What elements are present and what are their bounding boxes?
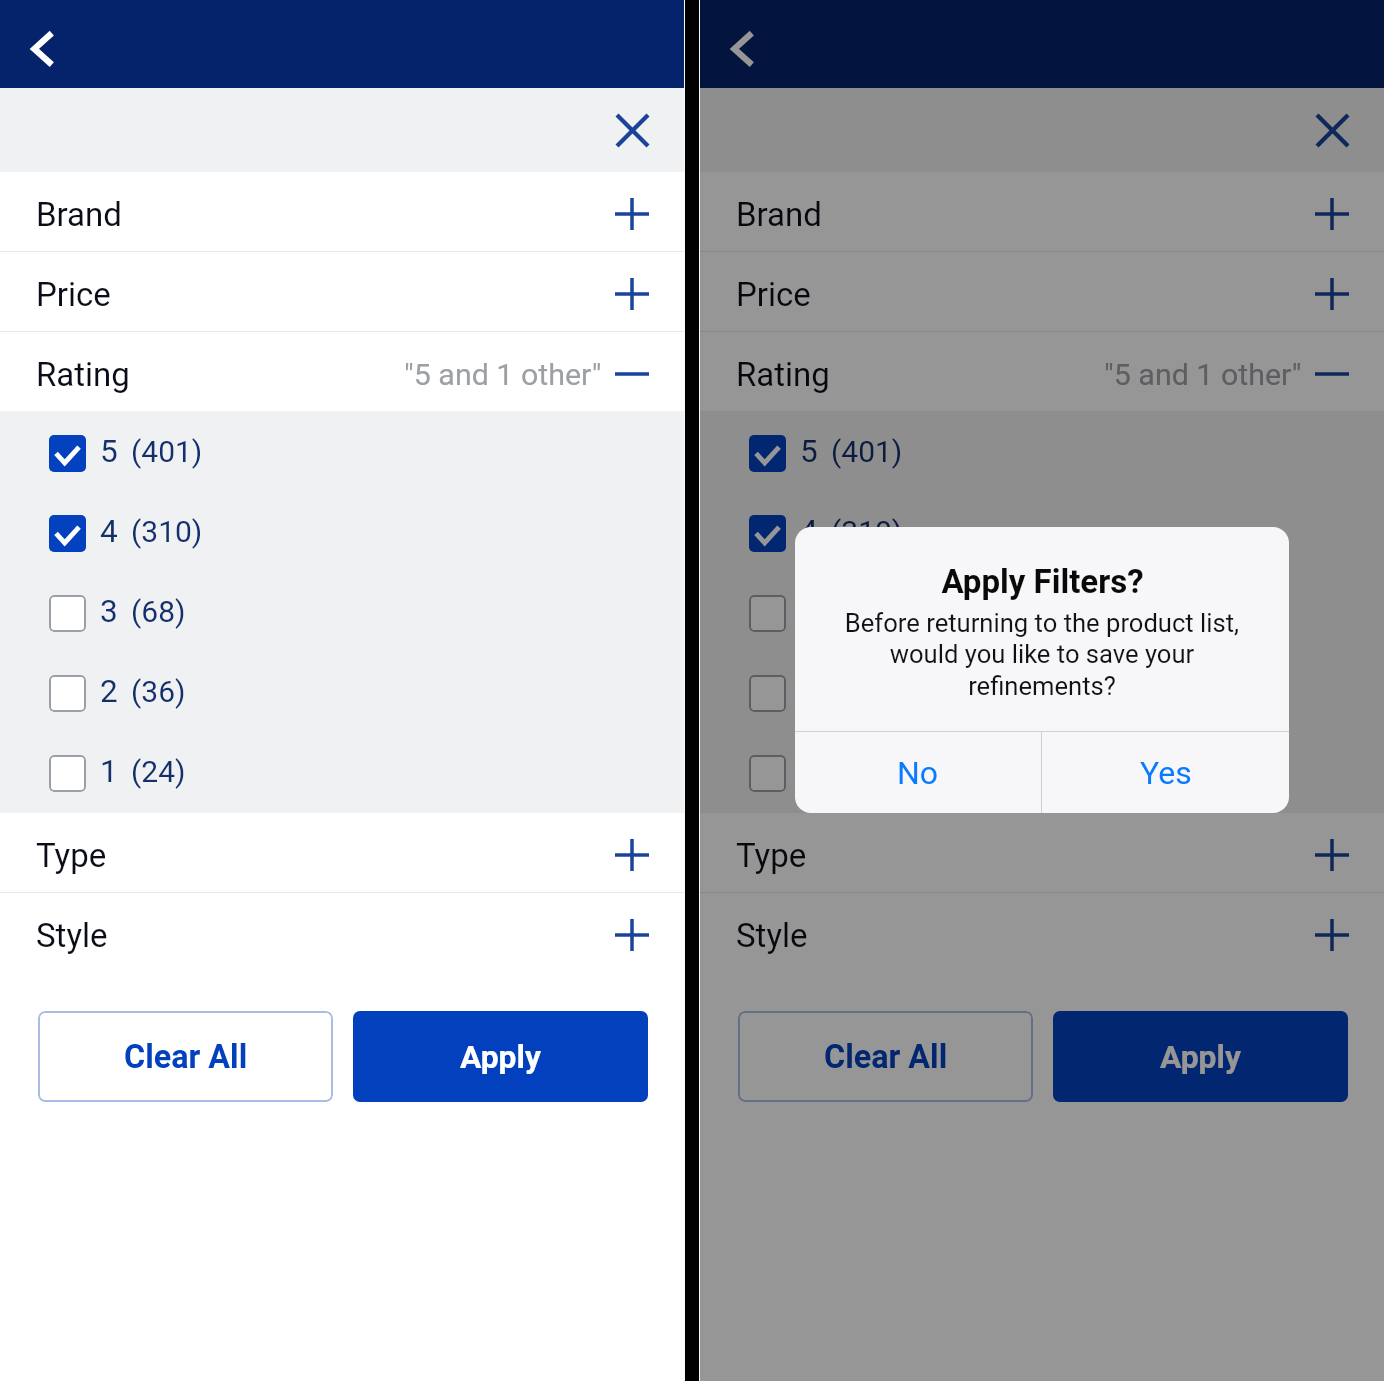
other: Expand Price xyxy=(1315,277,1349,311)
staticText: 3 xyxy=(100,593,118,630)
staticText: 4 xyxy=(800,513,818,550)
other: Expand Brand xyxy=(615,197,649,231)
staticText: Clear All xyxy=(824,1038,948,1076)
staticText: Rating xyxy=(736,355,830,394)
other: Expand Price xyxy=(615,277,649,311)
button[interactable]: No xyxy=(795,732,1041,813)
staticText: 1 xyxy=(100,753,118,790)
button[interactable]: Type xyxy=(700,813,1384,892)
staticText: Price xyxy=(36,275,111,314)
staticText: Clear All xyxy=(124,1038,248,1076)
other: Expand Type xyxy=(615,838,649,872)
staticText: Type xyxy=(736,836,807,875)
button[interactable]: Apply xyxy=(1053,1011,1348,1102)
button[interactable]: 1 xyxy=(0,731,684,811)
button[interactable]: Style xyxy=(700,893,1384,972)
staticText: 5 xyxy=(100,433,118,470)
staticText: Apply xyxy=(1160,1038,1241,1075)
staticText: Brand xyxy=(36,195,122,234)
button[interactable]: 4 xyxy=(700,491,1384,571)
other: Collapse Rating xyxy=(1315,357,1349,391)
staticText: Style xyxy=(36,916,108,955)
button[interactable]: Yes xyxy=(1042,732,1289,813)
button[interactable]: 5 xyxy=(700,411,1384,491)
button[interactable]: 2 xyxy=(0,651,684,731)
staticText: No xyxy=(897,754,939,792)
button[interactable]: 1 xyxy=(700,731,1384,811)
button[interactable]: Back xyxy=(27,27,56,71)
button[interactable]: 2 xyxy=(700,651,1384,731)
button[interactable]: Rating xyxy=(0,332,684,411)
button[interactable]: Style xyxy=(0,893,684,972)
staticText: Apply xyxy=(460,1038,541,1075)
button[interactable]: Clear All xyxy=(738,1011,1033,1102)
button[interactable]: Close xyxy=(617,115,648,146)
button[interactable]: Price xyxy=(0,252,684,331)
staticText: Price xyxy=(736,275,811,314)
button[interactable]: Close xyxy=(1317,115,1348,146)
other: Expand Style xyxy=(1315,918,1349,952)
staticText: (68) xyxy=(831,594,886,629)
staticText: (24) xyxy=(131,754,186,789)
staticText: (310) xyxy=(831,514,903,549)
button[interactable]: Price xyxy=(700,252,1384,331)
other: Collapse Rating xyxy=(615,357,649,391)
staticText: 4 xyxy=(100,513,118,550)
button[interactable]: Brand xyxy=(0,172,684,251)
staticText: (68) xyxy=(131,594,186,629)
staticText: 2 xyxy=(100,673,118,710)
staticText: Type xyxy=(36,836,107,875)
staticText: (401) xyxy=(131,434,203,469)
other: Expand Brand xyxy=(1315,197,1349,231)
button[interactable]: Brand xyxy=(700,172,1384,251)
button[interactable]: Type xyxy=(0,813,684,892)
other: Expand Type xyxy=(1315,838,1349,872)
staticText: (36) xyxy=(131,674,186,709)
staticText: Apply Filters? xyxy=(941,562,1144,601)
button[interactable]: Apply xyxy=(353,1011,648,1102)
staticText: Before returning to the product list, wo… xyxy=(815,608,1269,701)
other: Expand Style xyxy=(615,918,649,952)
staticText: Style xyxy=(736,916,808,955)
staticText: Rating xyxy=(36,355,130,394)
staticText: Yes xyxy=(1140,754,1192,792)
button[interactable]: 3 xyxy=(0,571,684,651)
staticText: Brand xyxy=(736,195,822,234)
button[interactable]: Back xyxy=(727,27,756,71)
staticText: "5 and 1 other" xyxy=(1104,357,1302,393)
button[interactable]: 3 xyxy=(700,571,1384,651)
staticText: (401) xyxy=(831,434,903,469)
button[interactable]: Clear All xyxy=(38,1011,333,1102)
button[interactable]: 5 xyxy=(0,411,684,491)
staticText: 5 xyxy=(800,433,818,470)
button[interactable]: 4 xyxy=(0,491,684,571)
staticText: "5 and 1 other" xyxy=(404,357,602,393)
button[interactable]: Rating xyxy=(700,332,1384,411)
staticText: (310) xyxy=(131,514,203,549)
